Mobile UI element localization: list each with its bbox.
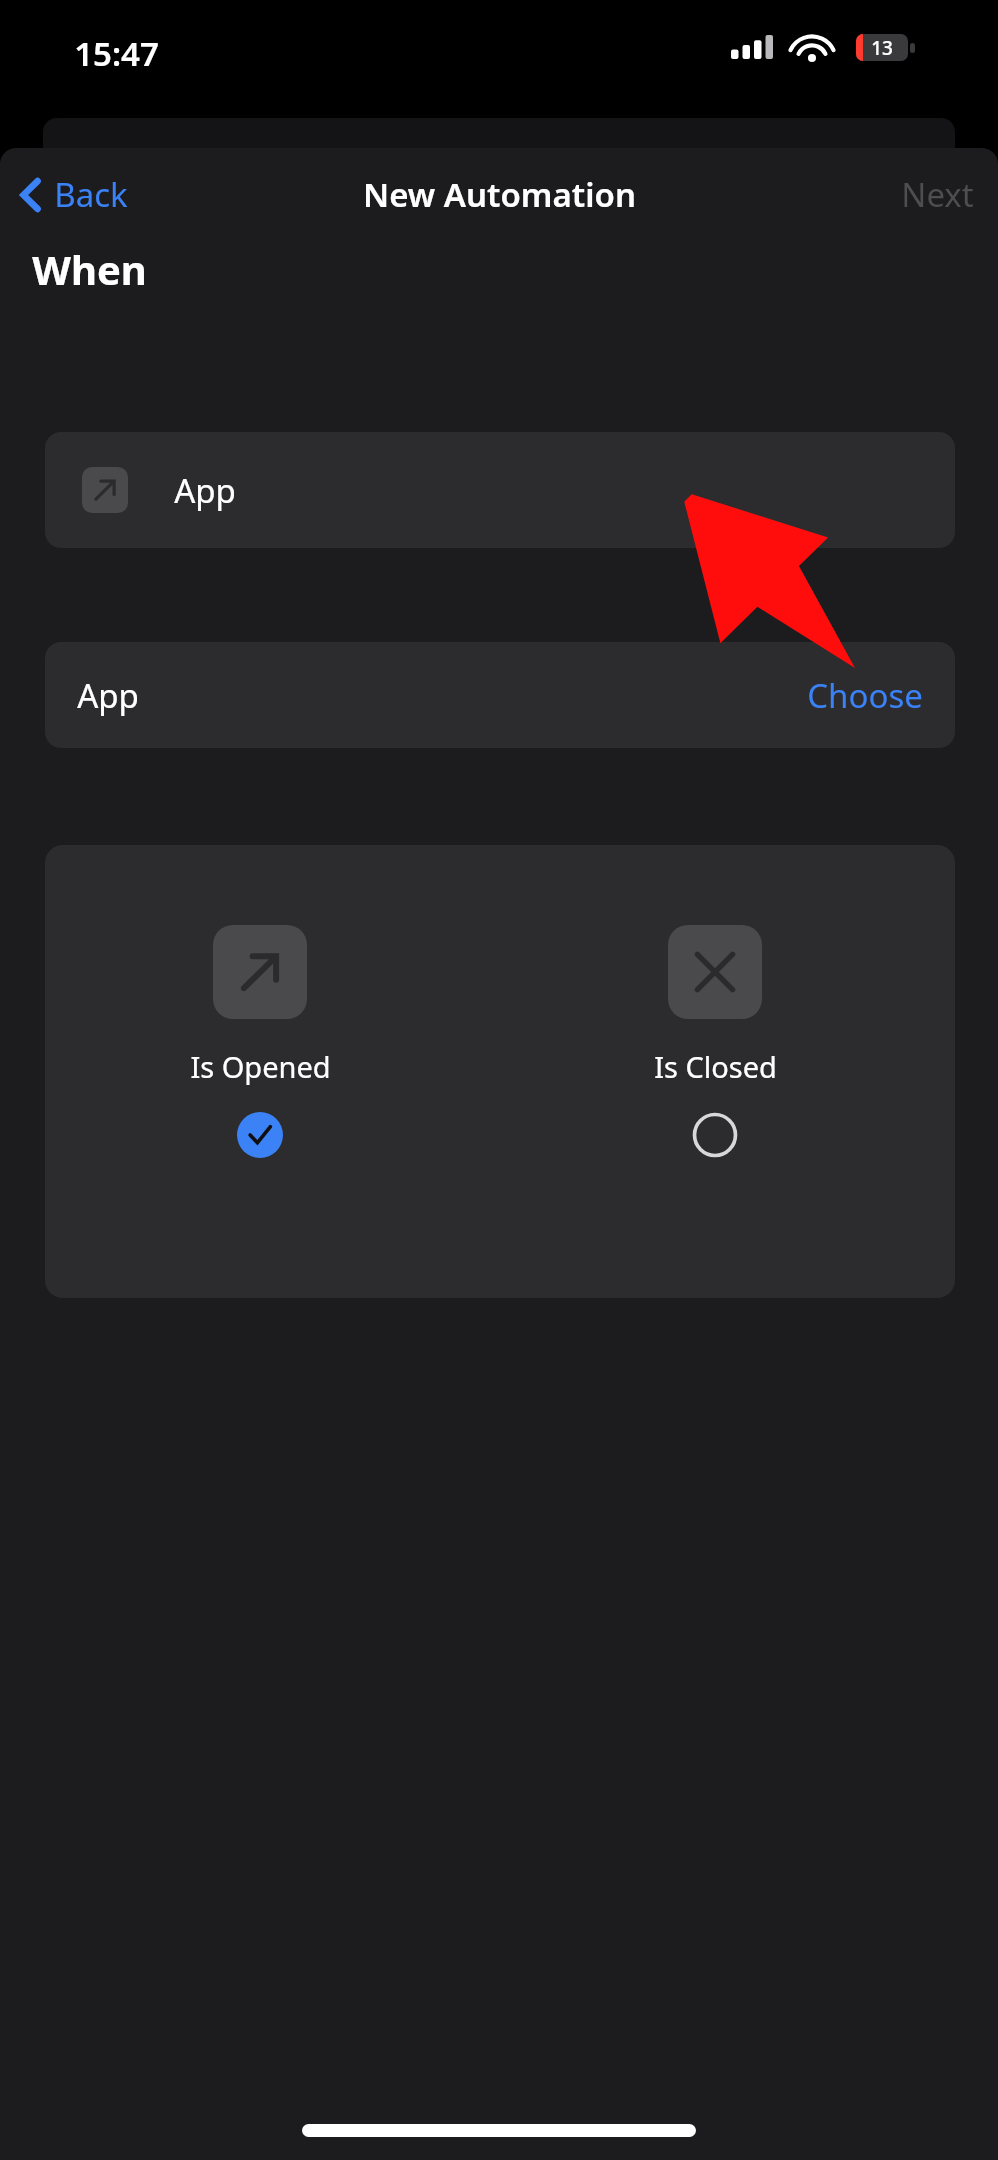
staticText: Is Opened [190,1047,331,1086]
staticText: Choose [807,673,923,718]
staticText: Is Closed [654,1047,777,1086]
staticText: Next [901,172,974,217]
staticText: Back [54,172,128,217]
staticText: When [32,242,147,296]
button[interactable]: App [45,642,955,748]
button[interactable]: Back [10,166,138,223]
staticText: New Automation [363,172,636,217]
button[interactable]: Is Closed [585,925,845,1158]
button[interactable]: Next [877,164,998,225]
button[interactable]: Is Opened [130,925,390,1158]
button[interactable]: App [45,432,955,548]
staticText: 13 [871,35,893,61]
staticText: App [174,468,236,513]
staticText: App [77,673,139,718]
staticText: 15:47 [74,31,159,76]
